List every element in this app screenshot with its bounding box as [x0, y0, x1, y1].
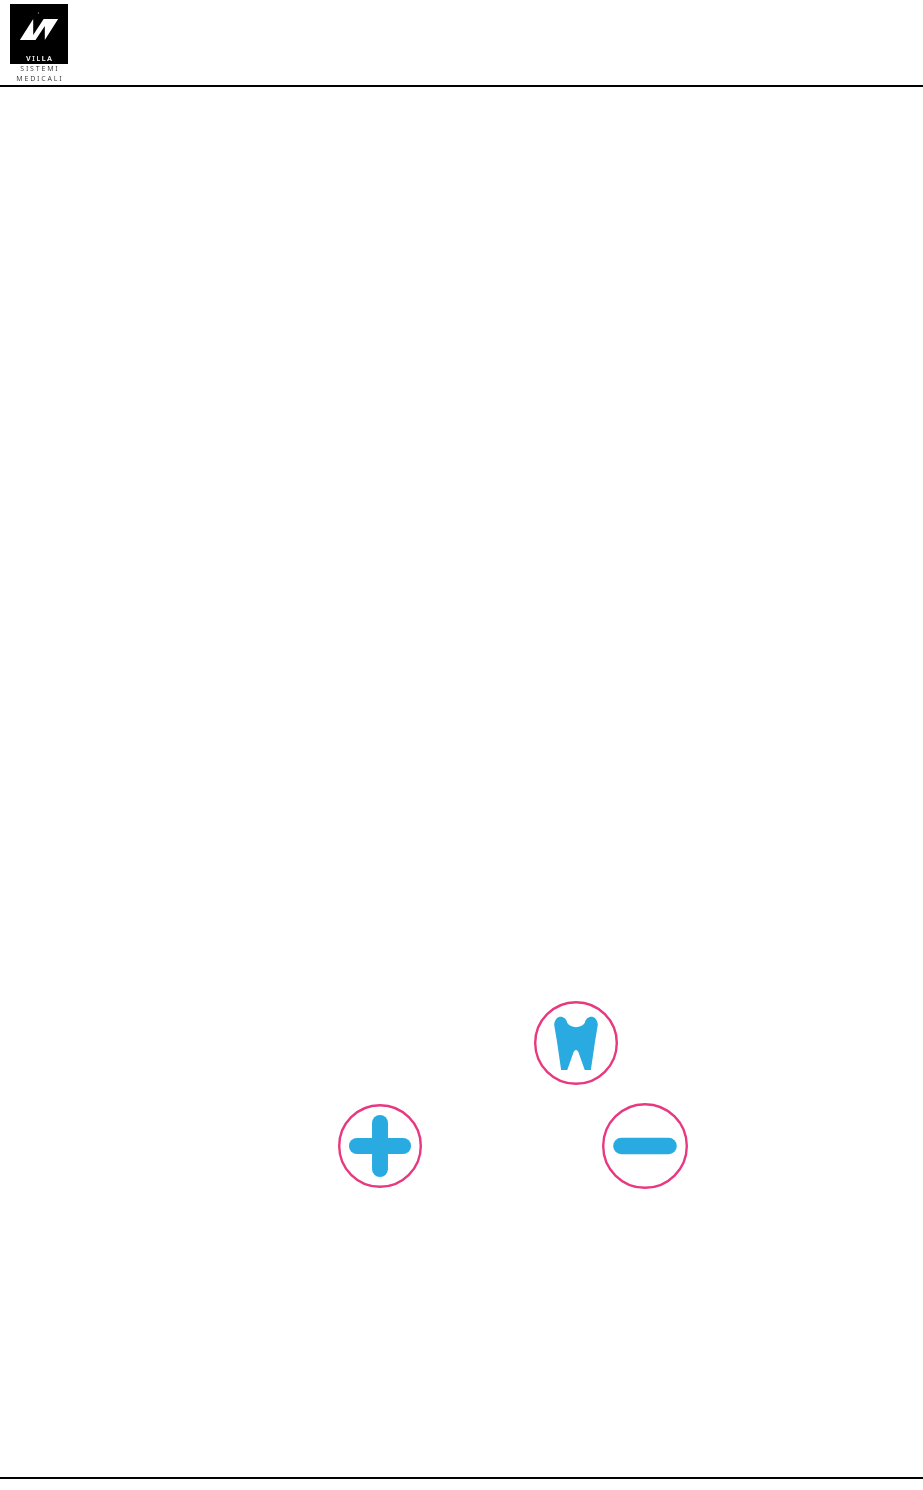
- staticText: V I L L A: [26, 54, 52, 64]
- button[interactable]: Villa Sistemi Medicali logo: [10, 4, 68, 84]
- button[interactable]: Tooth: [534, 1001, 618, 1085]
- button[interactable]: Add: [338, 1104, 422, 1188]
- button[interactable]: Remove: [602, 1103, 688, 1189]
- staticText: S I S T E M I: [20, 64, 58, 74]
- staticText: M E D I C A L I: [16, 74, 62, 84]
